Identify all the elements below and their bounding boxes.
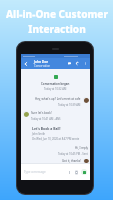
staticText: Today at 10:32 AM bbox=[44, 87, 67, 91]
staticText: Got it, thanks! bbox=[62, 159, 81, 163]
staticText: Today at 10:45 PM - Sent bbox=[58, 152, 88, 156]
staticText: All-in-One Customer bbox=[6, 7, 108, 21]
staticText: Type a message bbox=[24, 170, 46, 174]
staticText: Sure let's book! bbox=[31, 111, 52, 115]
button[interactable]: Insert document bbox=[74, 170, 79, 175]
staticText: John Smith bbox=[32, 132, 46, 136]
button[interactable]: Chat bbox=[67, 61, 72, 66]
staticText: Conversation began bbox=[41, 82, 70, 86]
staticText: John Doe bbox=[34, 60, 49, 64]
staticText: Hey, what's up? Let's meet at cafe bbox=[35, 97, 81, 101]
staticText: Today at 10:41 AM - ANS bbox=[31, 117, 61, 121]
button[interactable]: Call bbox=[75, 61, 80, 66]
staticText: On Wed, Jun 10, 2020 at 8:47 PM wrote bbox=[32, 137, 80, 141]
staticText: Conversation bbox=[34, 64, 51, 68]
button[interactable]: More options bbox=[83, 61, 88, 66]
staticText: Hi, I reply bbox=[75, 146, 88, 150]
staticText: Today at 10:39 AM bbox=[58, 103, 81, 107]
button[interactable]: Attach file bbox=[67, 170, 72, 175]
staticText: Let's Book a Ball! bbox=[32, 126, 61, 131]
button[interactable]: Back bbox=[23, 61, 28, 66]
button[interactable]: Send bbox=[81, 169, 87, 175]
staticText: Interaction bbox=[28, 22, 86, 36]
